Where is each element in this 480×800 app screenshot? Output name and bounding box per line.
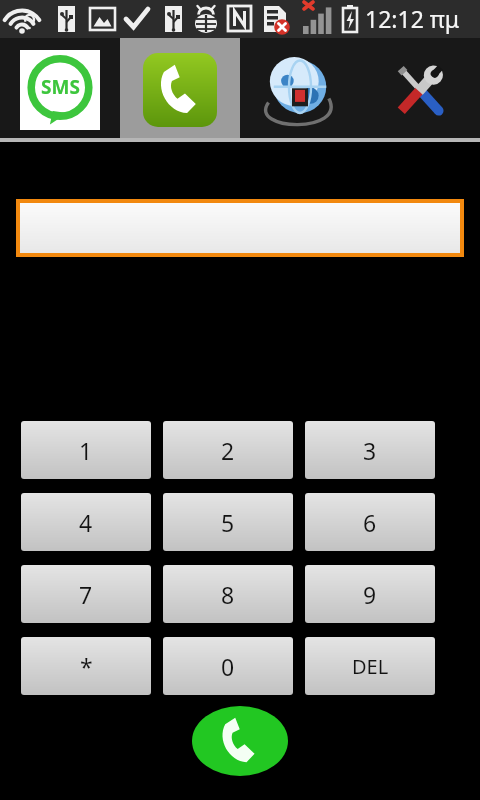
button[interactable]: 6 (305, 493, 435, 551)
button[interactable]: 4 (21, 493, 151, 551)
staticText: 0 (221, 651, 235, 682)
button[interactable]: SMS (0, 38, 120, 142)
button[interactable]: 3 (305, 421, 435, 479)
staticText: 3 (363, 435, 377, 466)
staticText: 1 (79, 435, 93, 466)
staticText: 12:12 πμ (365, 3, 460, 34)
button[interactable]: 8 (163, 565, 293, 623)
button[interactable]: DEL (305, 637, 435, 695)
staticText: 6 (363, 507, 377, 538)
button[interactable]: * (21, 637, 151, 695)
button[interactable]: 5 (163, 493, 293, 551)
button[interactable]: 9 (305, 565, 435, 623)
button[interactable]: 7 (21, 565, 151, 623)
staticText: DEL (352, 653, 389, 680)
button[interactable]: Dialer (120, 38, 240, 142)
staticText: * (80, 651, 93, 682)
button[interactable]: Phone number input (20, 203, 460, 253)
staticText: 9 (363, 579, 377, 610)
staticText: 4 (79, 507, 93, 538)
button[interactable]: 1 (21, 421, 151, 479)
button[interactable]: Network (240, 38, 360, 142)
button[interactable]: 0 (163, 637, 293, 695)
button[interactable]: Call (192, 706, 288, 776)
staticText: 8 (221, 579, 235, 610)
staticText: 2 (221, 435, 235, 466)
button[interactable]: 2 (163, 421, 293, 479)
staticText: 5 (221, 507, 235, 538)
button[interactable]: Tools (360, 38, 480, 142)
staticText: 7 (79, 579, 93, 610)
staticText: SMS (41, 74, 80, 100)
